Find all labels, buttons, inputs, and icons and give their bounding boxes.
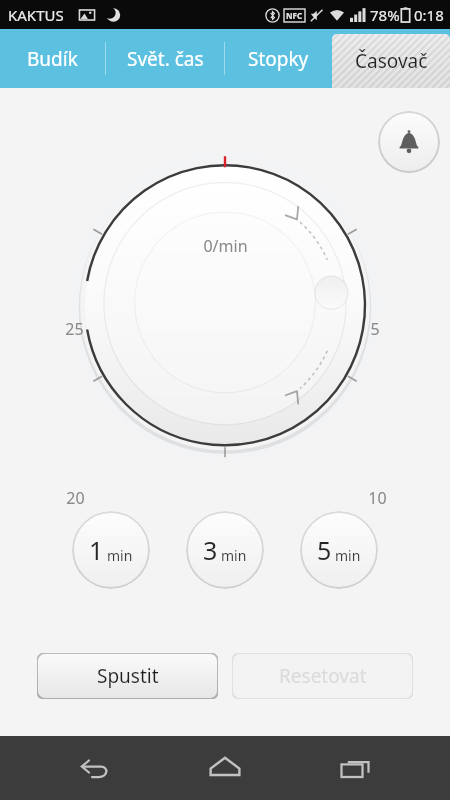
staticText: 10 — [368, 487, 387, 509]
staticText: 5 — [370, 318, 380, 340]
staticText: Spustit — [97, 663, 159, 689]
staticText: 3 — [203, 533, 218, 567]
button[interactable]: Recent apps — [320, 736, 390, 800]
button[interactable]: Back — [60, 736, 130, 800]
staticText: min — [221, 546, 247, 565]
staticText: 5 — [317, 533, 332, 567]
staticText: Stopky — [248, 46, 309, 72]
staticText: 0:18 — [414, 5, 444, 25]
staticText: 25 — [65, 318, 84, 340]
staticText: 78% — [370, 5, 400, 25]
staticText: 0/min — [203, 235, 248, 257]
button[interactable]: 1 — [72, 511, 150, 589]
staticText: Budík — [27, 46, 78, 72]
button[interactable]: Resetovat — [232, 653, 413, 699]
button[interactable]: Svět. čas — [106, 29, 224, 88]
button[interactable]: Stopky — [225, 29, 332, 88]
button[interactable]: Budík — [0, 29, 105, 88]
staticText: Svět. čas — [127, 46, 204, 72]
staticText: KAKTUS — [8, 5, 64, 25]
button[interactable]: Spustit — [37, 653, 218, 699]
button[interactable]: Alarm sound — [378, 111, 440, 173]
staticText: NFC — [286, 10, 303, 21]
button[interactable]: 3 — [186, 511, 264, 589]
staticText: 15 — [216, 570, 235, 592]
button[interactable]: Home — [190, 736, 260, 800]
staticText: Resetovat — [279, 663, 367, 689]
staticText: min — [335, 546, 361, 565]
staticText: Časovač — [355, 48, 428, 74]
button[interactable]: Časovač — [332, 34, 450, 88]
button[interactable]: 5 — [300, 511, 378, 589]
staticText: 20 — [66, 487, 85, 509]
staticText: 1 — [89, 533, 104, 567]
staticText: min — [107, 546, 133, 565]
